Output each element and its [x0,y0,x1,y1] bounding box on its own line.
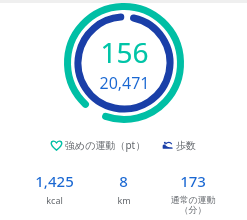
staticText: 8 [119,171,128,191]
button[interactable]: 156 [63,2,185,124]
staticText: 173 [180,171,206,191]
staticText: 強めの運動（pt） [65,138,146,152]
button[interactable]: 1,425 [20,170,89,207]
staticText: 歩数 [176,139,196,152]
button[interactable]: 173 [158,170,227,217]
button[interactable]: Heart points [49,136,148,154]
staticText: 通常の運動 （分） [170,194,216,216]
button[interactable]: Steps [160,137,198,154]
staticText: kcal [46,194,63,206]
button[interactable]: 8 [89,170,158,207]
staticText: 20,471 [99,72,150,94]
staticText: 1,425 [35,171,74,191]
staticText: km [117,194,131,206]
other: Heart points [51,140,62,151]
other: Steps [162,140,173,151]
staticText: 156 [100,33,149,71]
